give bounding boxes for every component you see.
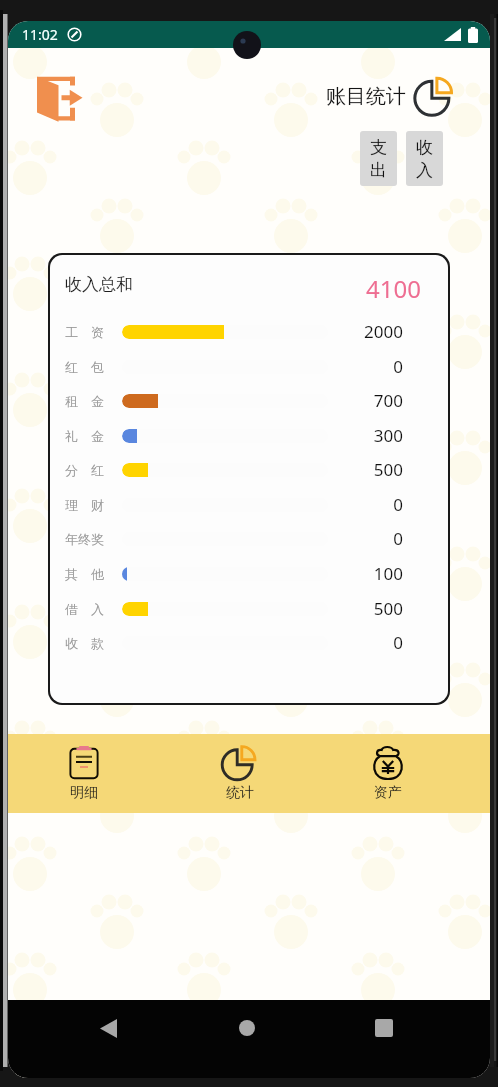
- staticText: 300: [373, 424, 403, 447]
- button[interactable]: Recents: [364, 1016, 404, 1040]
- staticText: 他: [91, 566, 104, 582]
- staticText: 金: [91, 428, 104, 444]
- staticText: 资: [91, 324, 104, 340]
- staticText: 年: [65, 531, 78, 547]
- button[interactable]: 支出: [360, 131, 397, 186]
- staticText: 终: [78, 531, 91, 547]
- staticText: 500: [373, 458, 403, 481]
- staticText: 2000: [364, 320, 403, 343]
- staticText: 0: [393, 355, 403, 378]
- staticText: 支出: [369, 137, 388, 181]
- staticText: 款: [91, 635, 104, 651]
- staticText: 资产: [374, 784, 402, 802]
- staticText: 金: [91, 393, 104, 409]
- staticText: 入: [91, 601, 104, 617]
- staticText: 0: [393, 527, 403, 550]
- staticText: 租: [65, 393, 78, 409]
- staticText: 0: [393, 631, 403, 654]
- staticText: 500: [373, 597, 403, 620]
- staticText: 工: [65, 324, 78, 340]
- staticText: 账目统计: [326, 84, 406, 109]
- staticText: 11:02: [22, 25, 58, 44]
- staticText: 奖: [91, 531, 104, 547]
- button[interactable]: 统计图: [414, 75, 456, 117]
- staticText: 明细: [70, 784, 98, 802]
- staticText: 700: [373, 389, 403, 412]
- staticText: 收: [65, 635, 78, 651]
- button[interactable]: 统计: [216, 743, 264, 805]
- staticText: 借: [65, 601, 78, 617]
- staticText: 0: [393, 493, 403, 516]
- staticText: 红: [65, 359, 78, 375]
- staticText: 分: [65, 462, 78, 478]
- button[interactable]: Back: [88, 1016, 128, 1040]
- button[interactable]: 收入: [406, 131, 443, 186]
- staticText: 财: [91, 497, 104, 513]
- staticText: 100: [373, 562, 403, 585]
- staticText: 红: [91, 462, 104, 478]
- staticText: 理: [65, 497, 78, 513]
- staticText: 收入: [415, 137, 434, 181]
- staticText: 包: [91, 359, 104, 375]
- staticText: 统计: [226, 784, 254, 802]
- staticText: 礼: [65, 428, 78, 444]
- button[interactable]: 明细: [60, 743, 108, 805]
- staticText: 4100: [366, 272, 421, 305]
- staticText: 其: [65, 566, 78, 582]
- button[interactable]: 退出: [31, 69, 89, 127]
- button[interactable]: 资产: [364, 743, 412, 805]
- button[interactable]: Home: [227, 1016, 267, 1040]
- staticText: 收入总和: [65, 274, 133, 295]
